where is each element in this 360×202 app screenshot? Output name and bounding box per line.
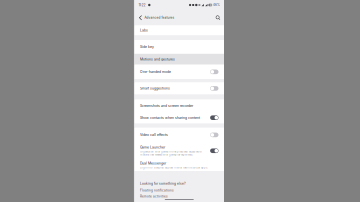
button[interactable]: Dual Messenger: [134, 159, 224, 171]
button[interactable]: Floating notifications: [140, 185, 174, 192]
button[interactable]: Screenshots and screen recorder: [134, 100, 224, 112]
button[interactable]: Side key: [134, 40, 224, 54]
button[interactable]: Video call effects: [134, 128, 224, 142]
staticText: 11:22: [138, 3, 145, 7]
staticText: One-handed mode: [140, 70, 171, 74]
staticText: Dual Messenger: [140, 161, 166, 165]
button[interactable]: Remote activities: [140, 192, 168, 198]
staticText: Motions and gestures: [140, 57, 175, 61]
staticText: Labs: [140, 28, 148, 32]
staticText: Remote activities: [140, 195, 168, 198]
button[interactable]: Back: [136, 11, 144, 24]
staticText: Game Launcher: [140, 145, 165, 149]
staticText: Advanced features: [144, 16, 174, 20]
button[interactable]: Game Launcher: [134, 142, 224, 159]
button[interactable]: Search: [214, 11, 222, 24]
staticText: Looking for something else?: [140, 182, 186, 185]
staticText: Sign in to a second account in your favo…: [140, 166, 208, 169]
staticText: Organize all your games in one place and…: [140, 150, 201, 156]
staticText: Screenshots and screen recorder: [140, 104, 193, 108]
staticText: Video call effects: [140, 133, 168, 137]
button[interactable]: Motions and gestures: [134, 54, 224, 65]
staticText: 46%: [213, 3, 220, 7]
staticText: Show contacts when sharing content: [140, 116, 200, 120]
staticText: Smart suggestions: [140, 86, 170, 90]
button[interactable]: Show contacts when sharing content: [134, 112, 224, 123]
button[interactable]: Smart suggestions: [134, 82, 224, 94]
staticText: Floating notifications: [140, 189, 174, 192]
button[interactable]: Labs: [134, 25, 224, 35]
button[interactable]: One-handed mode: [134, 65, 224, 79]
staticText: Side key: [140, 45, 154, 49]
